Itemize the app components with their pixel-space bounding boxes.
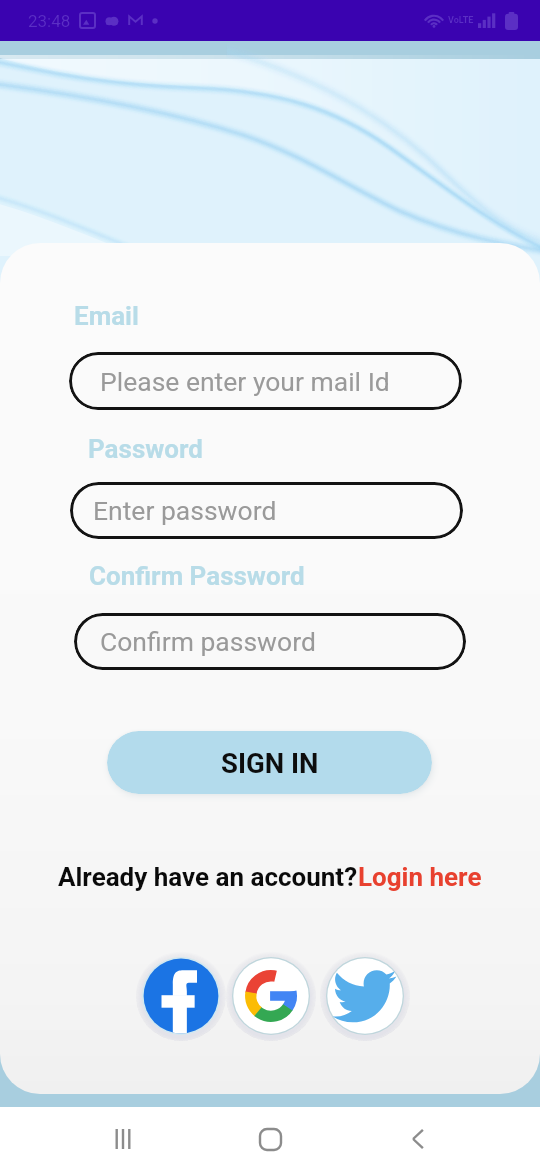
staticText: 23:48 bbox=[28, 11, 71, 31]
staticText: Login here bbox=[358, 862, 482, 892]
button[interactable]: Login here bbox=[358, 862, 482, 892]
button[interactable]: Back bbox=[393, 1114, 443, 1164]
button[interactable]: Home bbox=[245, 1114, 295, 1164]
button[interactable]: Recents bbox=[98, 1114, 148, 1164]
button[interactable]: Twitter bbox=[320, 951, 410, 1041]
button[interactable]: Confirm password bbox=[74, 613, 466, 670]
staticText: Please enter your mail Id bbox=[100, 366, 390, 397]
button[interactable]: Enter password bbox=[70, 482, 463, 539]
button[interactable]: Google bbox=[226, 951, 316, 1041]
staticText: VoLTE bbox=[448, 15, 474, 26]
button[interactable]: Facebook bbox=[136, 951, 226, 1041]
staticText: Confirm Password bbox=[89, 561, 305, 591]
button[interactable]: Please enter your mail Id bbox=[69, 352, 462, 410]
button[interactable]: SIGN IN bbox=[107, 731, 432, 794]
staticText: Enter password bbox=[93, 495, 277, 526]
staticText: Email bbox=[74, 301, 139, 331]
staticText: Already have an account? bbox=[58, 862, 358, 892]
staticText: Confirm password bbox=[100, 626, 316, 657]
staticText: SIGN IN bbox=[221, 747, 319, 779]
staticText: Password bbox=[88, 434, 203, 464]
